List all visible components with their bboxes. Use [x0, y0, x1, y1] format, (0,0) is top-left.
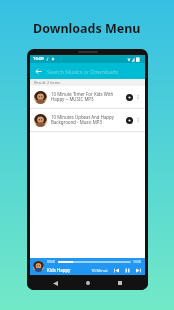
button[interactable]: Download: [124, 92, 134, 102]
button[interactable]: Next: [134, 266, 142, 274]
button[interactable]: Home: [83, 278, 93, 288]
staticText: Result: 2 items: [34, 80, 61, 85]
staticText: Kids Happy: [47, 267, 91, 273]
button[interactable]: 10 Minute Timer For Kids With Happy -- M…: [30, 86, 145, 108]
button[interactable]: 10 Minutes Upbeat And Happy Background -…: [30, 109, 145, 131]
staticText: 00:00: [47, 260, 56, 264]
button[interactable]: More options: [134, 93, 142, 101]
staticText: 10 Minute Timer For Kids With Happy -- M…: [51, 91, 122, 103]
staticText: 10:00: [133, 260, 142, 264]
staticText: 10 Minut: [91, 268, 108, 273]
button[interactable]: More options: [134, 116, 142, 124]
button[interactable]: 00:00: [30, 258, 145, 275]
button[interactable]: Download: [124, 115, 134, 125]
button[interactable]: Pause: [123, 266, 131, 274]
button[interactable]: Back: [33, 66, 44, 77]
staticText: Downloads Menu: [33, 20, 141, 37]
staticText: 10:09: [33, 56, 44, 62]
button[interactable]: Previous: [112, 266, 120, 274]
staticText: 10 Minutes Upbeat And Happy Background -…: [51, 114, 122, 126]
button[interactable]: Recent apps: [115, 278, 125, 288]
staticText: Search Musics or Downloads: [47, 68, 119, 75]
button[interactable]: Back: [50, 278, 60, 288]
